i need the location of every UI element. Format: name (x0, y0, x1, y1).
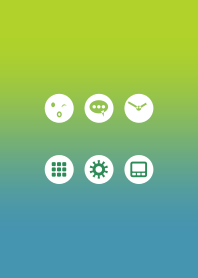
button[interactable]: Apps (45, 155, 74, 184)
button[interactable]: Clock (124, 94, 153, 123)
button[interactable]: Dashboard (124, 155, 153, 184)
button[interactable]: Settings (84, 155, 113, 184)
button[interactable]: Emoji (45, 94, 74, 123)
button[interactable]: Messages (84, 94, 113, 123)
